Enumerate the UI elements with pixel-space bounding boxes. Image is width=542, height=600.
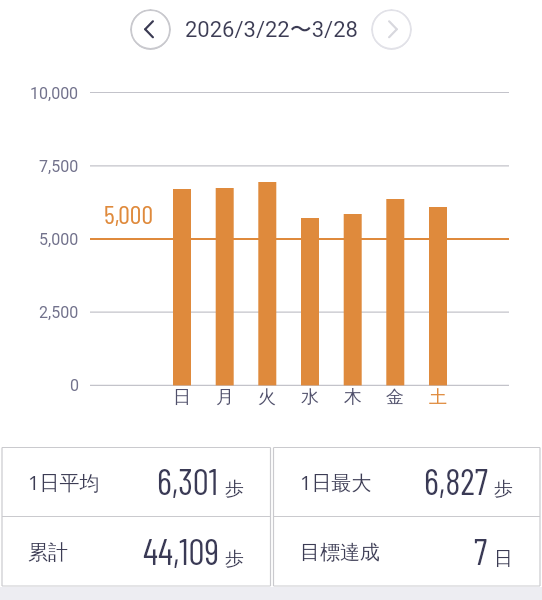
staticText: 目標達成 [300,540,380,565]
staticText: 2,500 [39,303,79,322]
staticText: 月 [216,386,234,409]
staticText: 歩 [225,477,244,501]
staticText: 5,000 [39,230,79,249]
staticText: 6,827 [424,459,488,502]
staticText: 土 [429,386,447,409]
staticText: 日 [494,547,513,571]
staticText: 2026/3/22〜3/28 [185,16,358,44]
staticText: 1日最大 [300,469,372,496]
staticText: 44,109 [143,529,219,572]
staticText: 7,500 [39,157,79,176]
staticText: 10,000 [30,84,79,103]
staticText: 火 [258,386,276,409]
staticText: 7 [474,529,488,572]
staticText: 0 [70,376,79,395]
staticText: 金 [386,386,404,409]
staticText: 木 [344,386,362,409]
staticText: 歩 [494,477,513,501]
staticText: 水 [301,386,319,409]
button[interactable] [371,9,412,50]
staticText: 1日平均 [28,469,100,496]
staticText: 日 [173,386,191,409]
button[interactable] [130,9,171,50]
staticText: 6,301 [157,459,219,502]
staticText: 5,000 [104,198,153,226]
staticText: 累計 [28,540,68,565]
staticText: 歩 [225,547,244,571]
